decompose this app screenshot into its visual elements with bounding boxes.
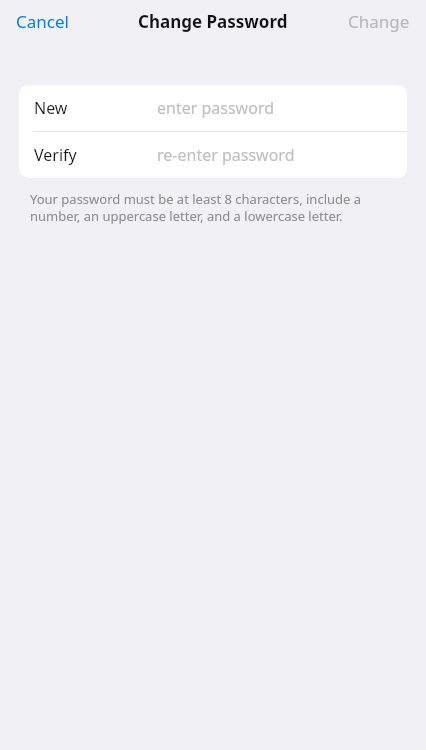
staticText: New [34, 97, 68, 119]
staticText: enter password [157, 97, 275, 119]
staticText: re-enter password [157, 144, 295, 166]
staticText: Verify [34, 144, 77, 166]
button[interactable]: Change [336, 4, 426, 39]
button[interactable]: Cancel [0, 4, 81, 39]
staticText: Cancel [16, 10, 69, 33]
button[interactable]: New password field [19, 85, 407, 131]
button[interactable]: Verify password field [19, 132, 407, 178]
staticText: Your password must be at least 8 charact… [30, 190, 398, 225]
staticText: Change Password [138, 10, 288, 33]
staticText: Change [348, 10, 410, 33]
